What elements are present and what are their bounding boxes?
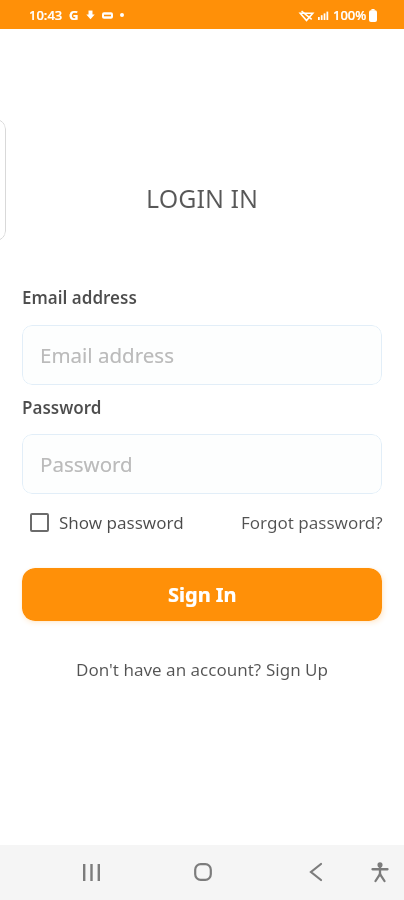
button[interactable]: Back <box>290 846 342 898</box>
button[interactable]: Sign Up <box>266 658 328 681</box>
staticText: 10:43 <box>29 6 63 24</box>
staticText: LOGIN IN <box>0 181 404 215</box>
staticText: 100% <box>333 6 367 24</box>
staticText: Email address <box>22 286 137 309</box>
button[interactable]: Email address <box>22 325 382 385</box>
staticText: Sign In <box>168 581 237 608</box>
button[interactable]: Sign In <box>22 568 382 621</box>
staticText: Forgot password? <box>241 511 383 534</box>
staticText: Sign Up <box>266 658 328 681</box>
staticText: Password <box>22 396 102 419</box>
button[interactable]: Show password <box>30 511 184 534</box>
staticText: Password <box>40 450 133 478</box>
staticText: Show password <box>59 511 184 534</box>
staticText: G <box>69 6 79 24</box>
button[interactable]: Home <box>177 846 229 898</box>
button[interactable]: Recents <box>65 846 117 898</box>
button[interactable]: Forgot password? <box>241 511 383 534</box>
staticText: Email address <box>40 341 174 369</box>
staticText: Don't have an account? <box>76 658 266 681</box>
button[interactable]: Password <box>22 434 382 494</box>
button[interactable]: Accessibility <box>354 846 404 898</box>
